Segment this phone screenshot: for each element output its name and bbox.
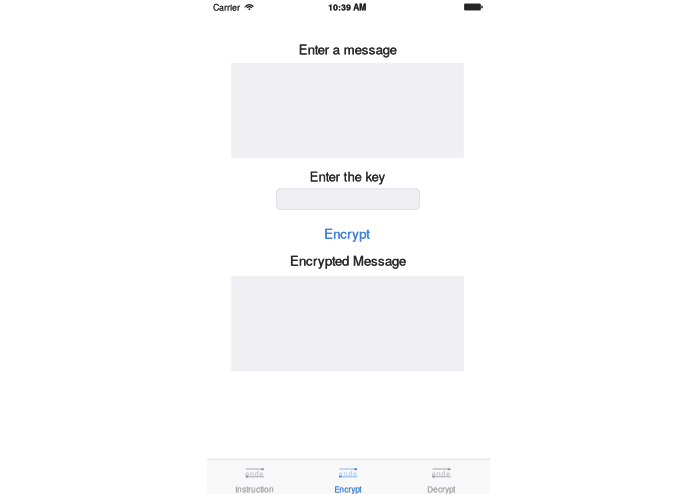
staticText: 10:39 AM <box>328 1 366 13</box>
staticText: Enter a message <box>299 39 397 58</box>
staticText: Carrier <box>213 1 240 13</box>
staticText: Enter the key <box>310 166 386 185</box>
staticText: Enter the key <box>309 166 385 185</box>
staticText: Encrypted Message <box>290 251 406 269</box>
staticText: 10:39 AM <box>328 1 366 13</box>
button[interactable]: ende <box>394 459 488 494</box>
staticText: ende <box>339 468 357 478</box>
button[interactable]: Encrypt <box>316 220 378 246</box>
staticText: Encrypt <box>335 483 362 494</box>
staticText: Decrypt <box>427 483 455 494</box>
staticText: Carrier <box>213 1 240 13</box>
staticText: ende <box>432 468 450 478</box>
staticText: Instruction <box>235 483 274 494</box>
staticText: Encrypted Message <box>290 251 406 269</box>
staticText: Encrypt <box>334 483 361 494</box>
button[interactable]: ende <box>301 459 395 494</box>
staticText: Encrypt <box>324 224 370 242</box>
staticText: Encrypt <box>324 224 370 242</box>
button[interactable]: ende <box>207 459 302 494</box>
staticText: ende <box>432 468 450 478</box>
staticText: Enter a message <box>298 39 396 58</box>
staticText: Decrypt <box>427 483 455 494</box>
staticText: Instruction <box>235 483 274 494</box>
staticText: ende <box>245 468 264 478</box>
staticText: ende <box>339 468 357 478</box>
staticText: ende <box>245 468 264 478</box>
